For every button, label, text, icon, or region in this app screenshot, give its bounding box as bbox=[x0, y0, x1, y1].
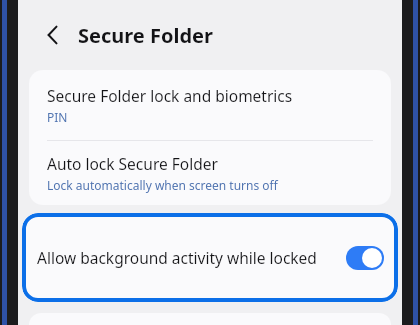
staticText: Allow background activity while locked bbox=[37, 247, 336, 268]
staticText: PIN bbox=[47, 109, 68, 125]
staticText: Secure Folder lock and biometrics bbox=[47, 85, 293, 106]
button[interactable]: Allow background activity toggle, on bbox=[346, 246, 384, 270]
button[interactable]: Back bbox=[36, 18, 70, 52]
button[interactable]: Auto lock Secure Folder bbox=[29, 141, 391, 205]
button[interactable]: Allow background activity while locked bbox=[22, 213, 398, 302]
button[interactable]: Secure Folder lock and biometrics bbox=[29, 70, 391, 140]
staticText: Auto lock Secure Folder bbox=[47, 153, 218, 174]
staticText: Lock automatically when screen turns off bbox=[47, 177, 278, 193]
staticText: Secure Folder bbox=[78, 22, 213, 49]
